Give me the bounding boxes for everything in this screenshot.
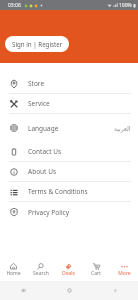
staticText: 03:06: [8, 2, 21, 9]
button[interactable]: Cart: [82, 253, 110, 281]
staticText: Service: [28, 99, 50, 108]
staticText: Terms & Conditions: [28, 187, 88, 196]
staticText: Privacy Policy: [28, 208, 70, 217]
button[interactable]: Sign in | Register: [5, 36, 69, 52]
button[interactable]: Home: [0, 253, 27, 281]
staticText: Cart: [91, 270, 101, 277]
button[interactable]: Home: [46, 281, 92, 300]
staticText: Deals: [62, 270, 75, 277]
staticText: Home: [6, 270, 21, 277]
button[interactable]: Service: [0, 94, 138, 114]
staticText: 100%: [119, 2, 132, 9]
staticText: Search: [33, 270, 49, 277]
button[interactable]: About Us: [0, 162, 138, 182]
button[interactable]: Recent apps: [0, 281, 46, 300]
button[interactable]: Privacy Policy: [0, 202, 138, 222]
button[interactable]: Terms & Conditions: [0, 182, 138, 202]
staticText: More: [118, 270, 131, 277]
staticText: Language: [28, 124, 59, 133]
button[interactable]: Store: [0, 74, 138, 94]
staticText: العربية: [114, 125, 131, 132]
staticText: About Us: [28, 167, 57, 176]
staticText: Sign in | Register: [12, 40, 63, 48]
staticText: Store: [28, 79, 45, 88]
button[interactable]: Contact Us: [0, 142, 138, 162]
button[interactable]: Deals: [54, 253, 82, 281]
staticText: Contact Us: [28, 147, 62, 156]
button[interactable]: Back: [92, 281, 138, 300]
button[interactable]: Language: [0, 114, 138, 142]
button[interactable]: More: [110, 253, 138, 281]
button[interactable]: Search: [27, 253, 54, 281]
